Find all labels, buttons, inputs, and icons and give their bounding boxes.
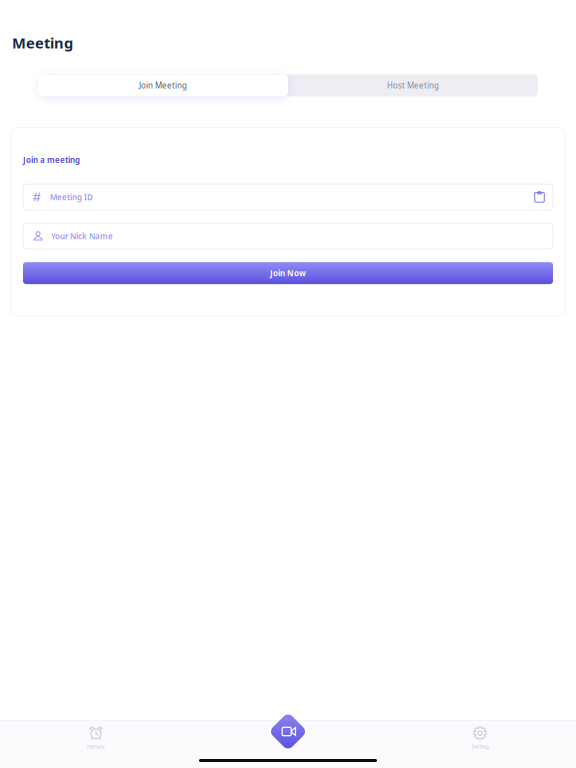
button[interactable]: Setting [384, 720, 576, 768]
staticText: Setting [471, 743, 488, 750]
staticText: Join Now [270, 268, 306, 278]
staticText: Host Meeting [387, 80, 439, 91]
staticText: Meeting ID [50, 192, 93, 202]
button[interactable]: New meeting [266, 709, 310, 753]
button[interactable]: Host Meeting [288, 74, 538, 96]
button[interactable]: History [0, 720, 192, 768]
button[interactable]: Join Now [23, 262, 553, 284]
staticText: Your Nick Name [51, 231, 113, 241]
button[interactable]: Join Meeting [38, 74, 288, 96]
staticText: History [87, 743, 105, 750]
staticText: Join a meeting [23, 154, 80, 165]
staticText: Meeting [12, 33, 73, 52]
staticText: Join Meeting [139, 80, 187, 91]
